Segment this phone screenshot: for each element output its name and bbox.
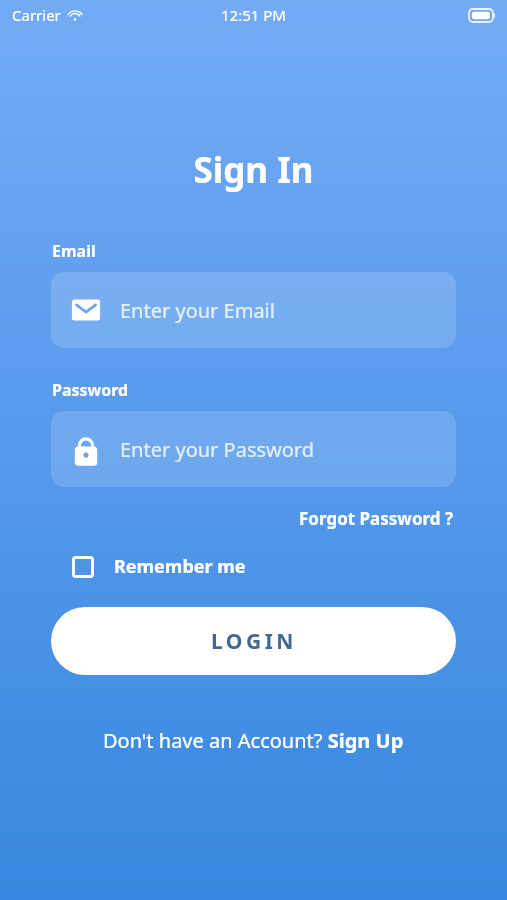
staticText: Enter your Password	[120, 436, 315, 463]
staticText: Don't have an Account? Sign Up	[103, 727, 404, 754]
staticText: Sign In	[0, 146, 507, 194]
button[interactable]: Forgot Password ?	[297, 504, 456, 533]
button[interactable]: Remember me	[62, 548, 256, 585]
staticText: Password	[52, 379, 129, 401]
staticText: Remember me	[114, 554, 246, 579]
button[interactable]: LOGIN	[51, 607, 456, 675]
staticText: Carrier	[12, 5, 61, 25]
staticText: Forgot Password ?	[299, 507, 454, 530]
button[interactable]: Enter your Email	[51, 272, 456, 348]
staticText: Email	[52, 240, 96, 262]
staticText: 12:51 PM	[221, 5, 286, 25]
button[interactable]: Enter your Password	[51, 411, 456, 487]
button[interactable]: Don't have an Account? Sign Up	[97, 723, 410, 758]
staticText: Enter your Email	[120, 297, 275, 324]
staticText: LOGIN	[211, 627, 297, 656]
